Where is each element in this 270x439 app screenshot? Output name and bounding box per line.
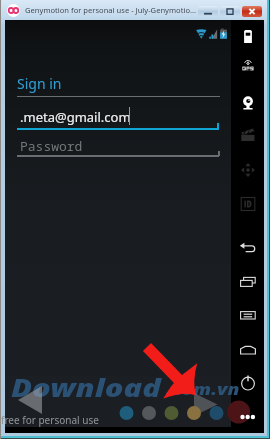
button[interactable]: Minimize bbox=[198, 6, 218, 17]
button[interactable]: Close bbox=[242, 6, 262, 17]
button[interactable]: Home bbox=[238, 341, 258, 361]
button[interactable]: Camera bbox=[238, 94, 258, 114]
button[interactable]: Recent apps bbox=[238, 274, 258, 294]
staticText: Genymotion for personal use - July-Genym… bbox=[25, 5, 197, 15]
staticText: Password bbox=[20, 137, 83, 155]
button[interactable]: Maximize bbox=[220, 6, 240, 17]
button[interactable]: Identifiers bbox=[238, 194, 258, 214]
button[interactable]: Screen recorder bbox=[238, 126, 258, 146]
staticText: .com.vn bbox=[166, 379, 240, 399]
staticText: Sign in bbox=[17, 74, 62, 93]
staticText: .meta@gmail.com bbox=[20, 108, 131, 126]
button[interactable]: Power bbox=[238, 373, 258, 393]
staticText: Download bbox=[11, 371, 161, 404]
staticText: free for personal use bbox=[1, 413, 99, 427]
button[interactable]: Menu bbox=[238, 307, 258, 327]
button[interactable]: GPS bbox=[238, 59, 258, 79]
button[interactable]: Rotate bbox=[238, 160, 258, 180]
button[interactable]: Battery bbox=[238, 27, 258, 47]
button[interactable]: Back bbox=[238, 241, 258, 261]
